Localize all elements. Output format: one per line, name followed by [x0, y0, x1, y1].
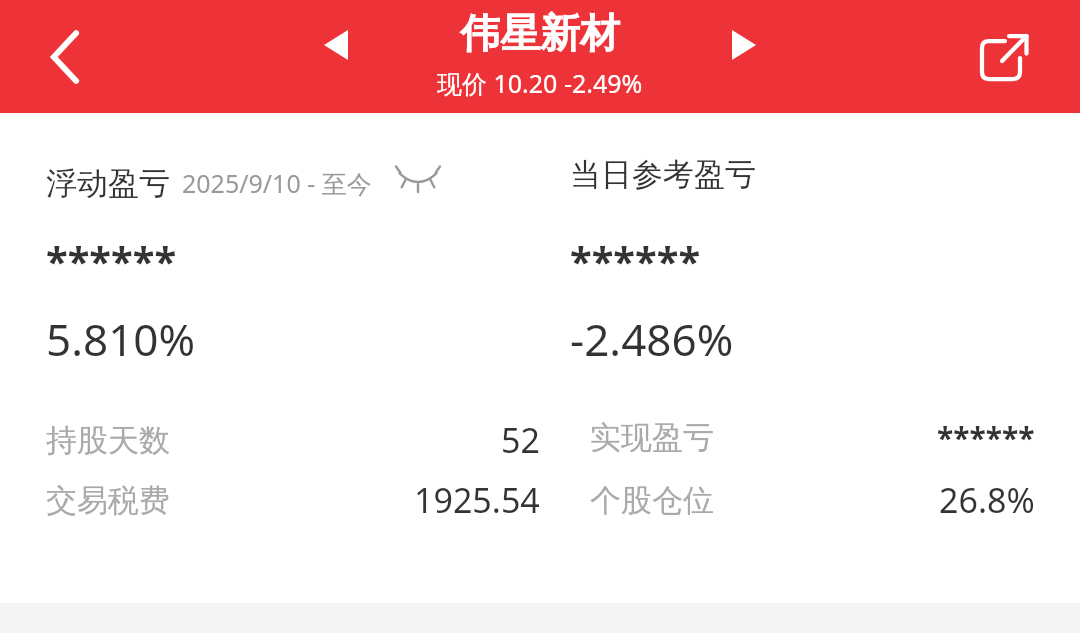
staticText: ******: [570, 233, 701, 287]
staticText: 浮动盈亏: [46, 164, 170, 203]
staticText: 2025/9/10 - 至今: [182, 166, 372, 200]
staticText: 交易税费: [46, 481, 170, 520]
staticText: 伟星新材: [460, 8, 620, 58]
staticText: 持股天数: [46, 421, 170, 460]
staticText: 现价 10.20 -2.49%: [437, 66, 643, 100]
button[interactable]: 实现盈亏: [590, 417, 1035, 458]
staticText: 5.810%: [46, 309, 196, 369]
staticText: 1925.54: [414, 477, 540, 523]
button[interactable]: Share: [962, 15, 1046, 99]
button[interactable]: 持股天数: [46, 417, 540, 463]
staticText: 个股仓位: [590, 481, 714, 520]
staticText: ******: [46, 233, 177, 287]
staticText: -2.486%: [570, 309, 734, 369]
button[interactable]: Back: [26, 12, 106, 102]
staticText: 实现盈亏: [590, 418, 714, 457]
staticText: ******: [937, 417, 1035, 458]
button[interactable]: Show or hide amounts: [390, 155, 446, 203]
button[interactable]: Previous stock: [300, 9, 372, 81]
button[interactable]: 交易税费: [46, 477, 540, 523]
staticText: 52: [501, 417, 540, 463]
staticText: 当日参考盈亏: [570, 155, 756, 194]
staticText: 26.8%: [939, 477, 1035, 523]
button[interactable]: Next stock: [708, 9, 780, 81]
button[interactable]: 个股仓位: [590, 477, 1035, 523]
